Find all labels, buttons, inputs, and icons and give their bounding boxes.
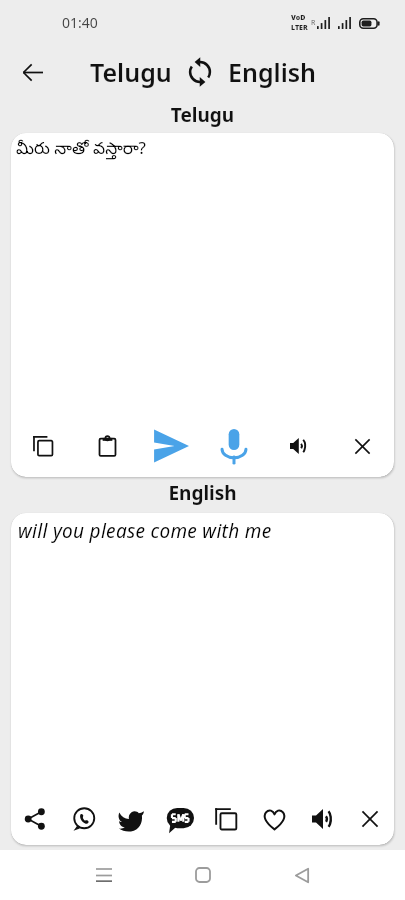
- button[interactable]: Back: [252, 850, 351, 900]
- button[interactable]: Copy: [24, 427, 62, 465]
- button[interactable]: Swap languages: [185, 57, 215, 87]
- button[interactable]: Twitter: [112, 800, 150, 838]
- button[interactable]: Copy: [207, 800, 245, 838]
- staticText: will you please come with me: [18, 518, 272, 544]
- button[interactable]: Listen: [279, 427, 317, 465]
- button[interactable]: Home: [153, 850, 252, 900]
- button[interactable]: Share: [16, 800, 54, 838]
- staticText: R: [311, 18, 316, 28]
- button[interactable]: Speak: [215, 427, 253, 465]
- button[interactable]: Paste: [88, 427, 126, 465]
- staticText: VoD: [291, 13, 306, 23]
- button[interactable]: Translate: [152, 427, 190, 465]
- button[interactable]: English: [228, 55, 316, 89]
- button[interactable]: Recent apps: [54, 850, 153, 900]
- button[interactable]: Telugu: [90, 55, 172, 89]
- button[interactable]: Favorite: [255, 800, 293, 838]
- button[interactable]: Clear: [351, 800, 389, 838]
- staticText: మీరు నాతో వస్తారా?: [16, 136, 146, 162]
- button[interactable]: Listen: [303, 800, 341, 838]
- staticText: LTER: [291, 23, 308, 33]
- button[interactable]: WhatsApp: [64, 800, 102, 838]
- staticText: 01:40: [62, 13, 98, 32]
- button[interactable]: Back: [14, 54, 50, 90]
- button[interactable]: SMS: [160, 800, 198, 838]
- staticText: English: [0, 480, 405, 506]
- button[interactable]: Clear: [343, 427, 381, 465]
- staticText: Telugu: [0, 102, 405, 128]
